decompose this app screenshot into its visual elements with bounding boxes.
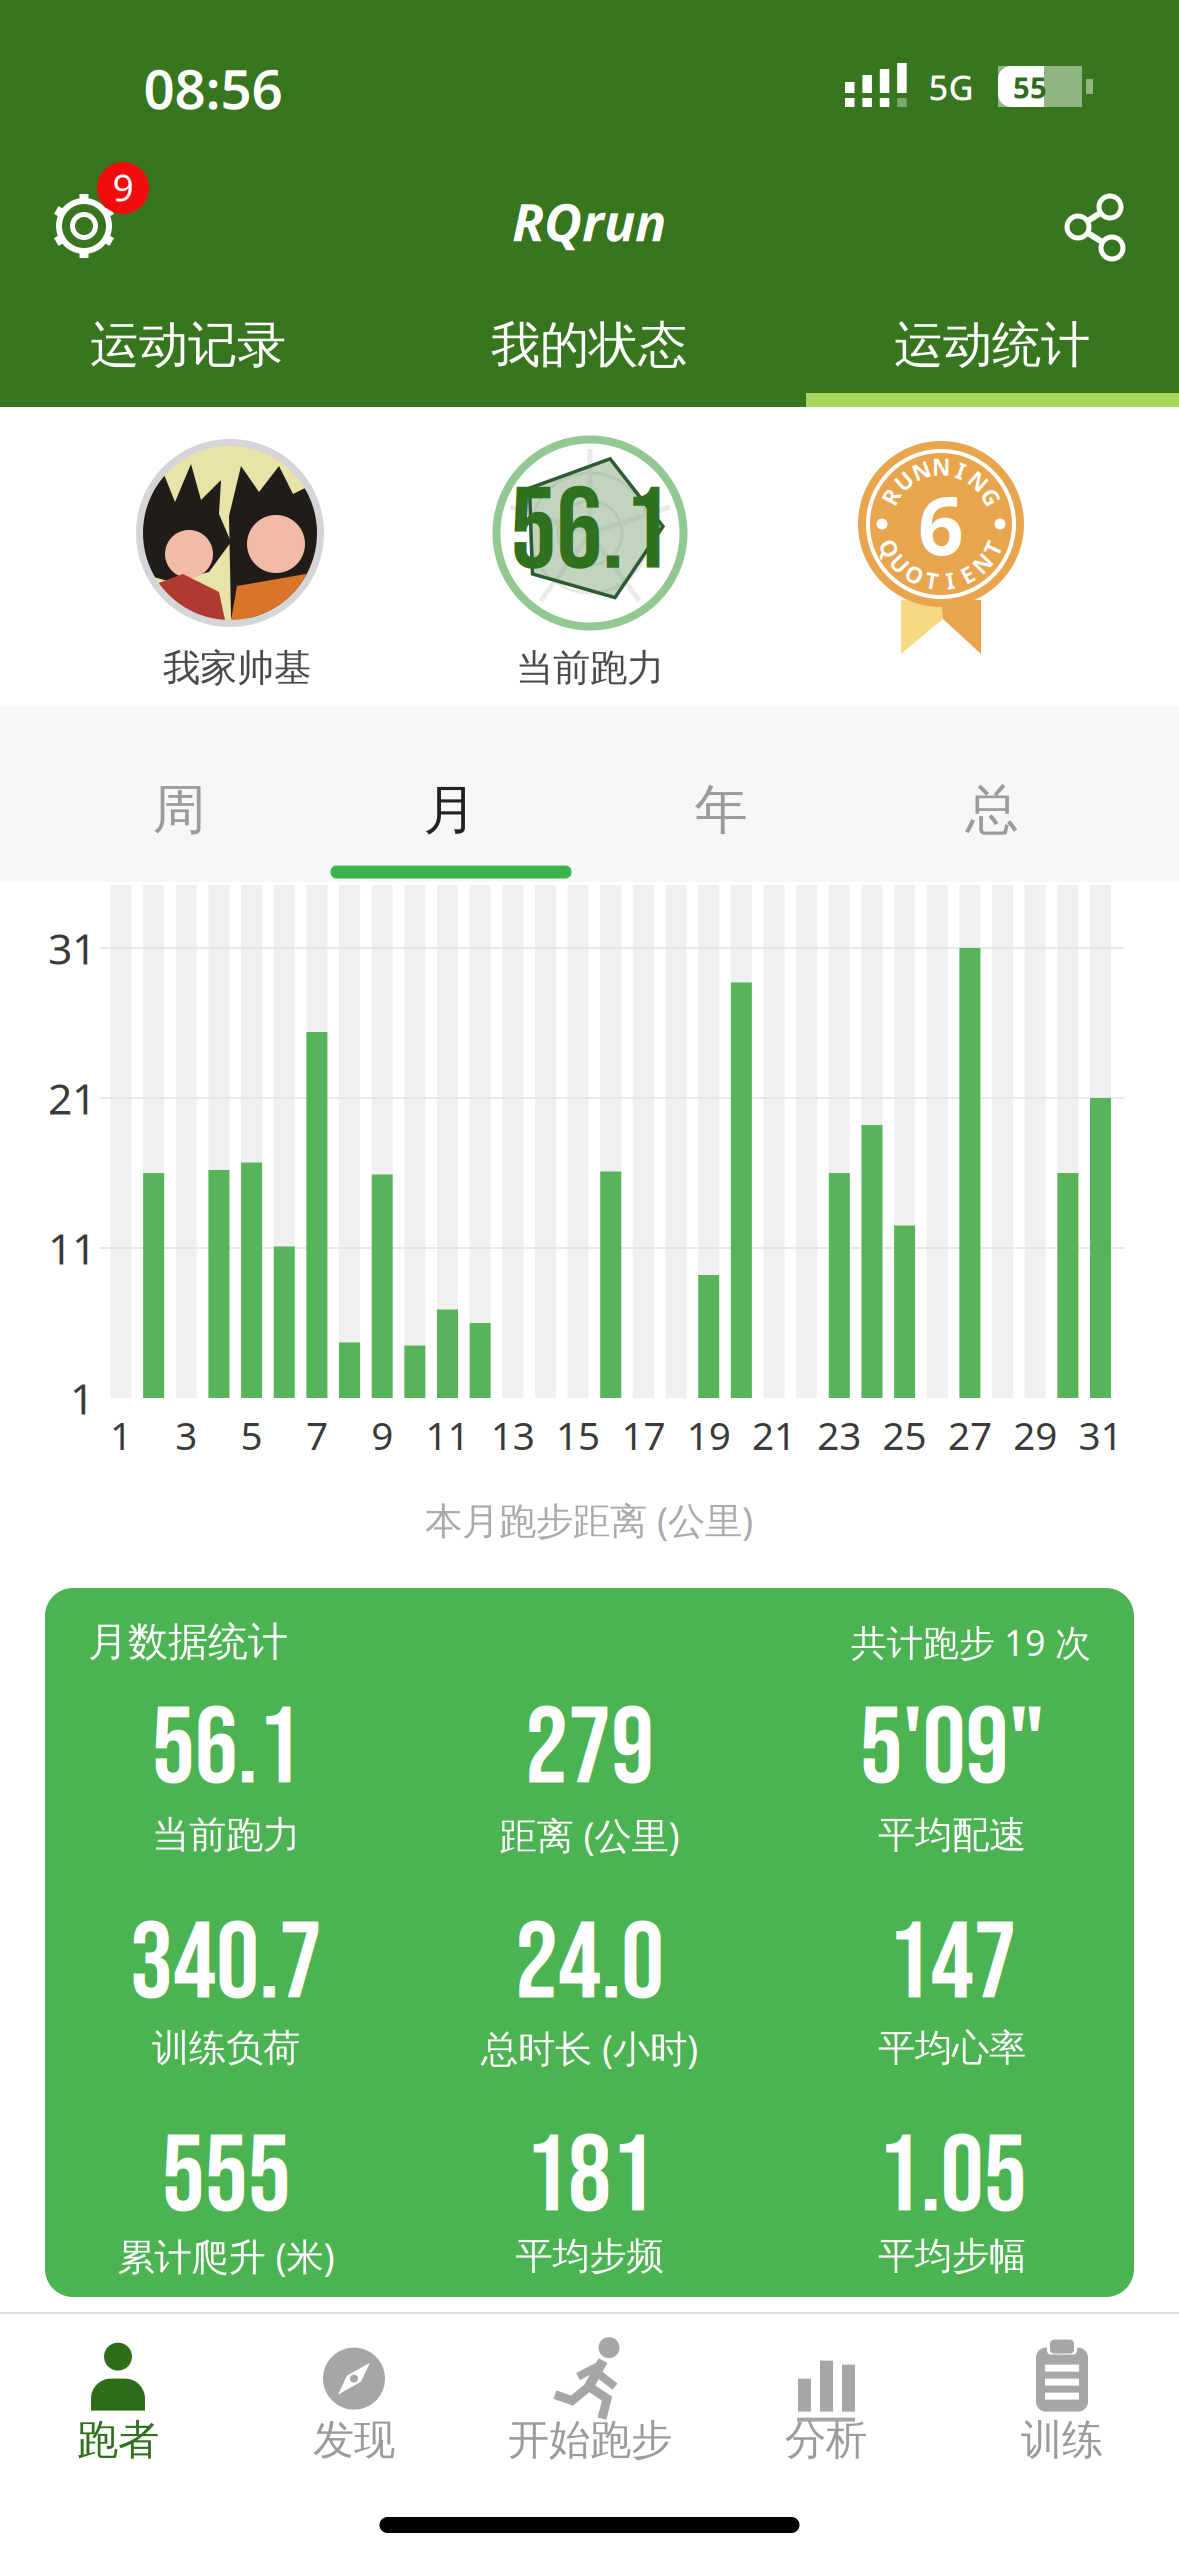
staticText: 总时长 (小时) [481,2023,698,2073]
staticText: 31 [48,920,96,976]
staticText: 开始跑步 [508,2415,672,2465]
button[interactable]: 周 [59,745,299,875]
staticText: U [891,548,908,578]
staticText: 29 [1013,1409,1057,1461]
staticText: 21 [48,1070,96,1126]
staticText: 累计爬升 (米) [117,2231,334,2281]
button[interactable]: 跑者 [0,2325,235,2475]
button[interactable]: 年 [601,745,841,875]
button[interactable]: 开始跑步 [472,2325,707,2475]
staticText: I [946,565,955,595]
button[interactable]: 我的状态 [392,300,785,390]
staticText: N [973,548,991,578]
staticText: 31 [1078,1409,1122,1461]
button[interactable]: 6 [841,422,1041,672]
staticText: 11 [425,1409,469,1461]
staticText: 本月跑步距离 (公里) [425,1495,753,1545]
staticText: 1 [110,1409,132,1461]
staticText: 周 [152,777,205,843]
staticText: T [925,565,938,595]
staticText: 分析 [785,2415,867,2465]
staticText: 9 [371,1409,393,1461]
staticText: 跑者 [77,2415,159,2465]
staticText: 我家帅基 [163,645,311,691]
button[interactable]: 月 [330,745,570,875]
staticText: 共计跑步 19 次 [851,1618,1091,1666]
staticText: 56.1 [151,1685,300,1815]
staticText: 运动统计 [894,315,1090,375]
staticText: R [883,482,898,512]
staticText: 1.05 [877,2113,1026,2243]
staticText: 19 [687,1409,731,1461]
staticText: RQrun [512,186,666,256]
staticText: 发现 [313,2415,395,2465]
staticText: 55 [1013,67,1047,106]
staticText: 年 [694,777,747,843]
button[interactable]: 训练 [944,2325,1179,2475]
staticText: 147 [887,1900,1016,2030]
staticText: 当前跑力 [516,645,664,691]
staticText: 距离 (公里) [499,1810,679,1860]
staticText: 555 [161,2113,290,2243]
staticText: 当前跑力 [152,1812,300,1858]
staticText: 17 [621,1409,665,1461]
staticText: 我的状态 [491,315,687,375]
staticText: U [895,466,912,496]
button[interactable] [136,439,324,627]
button[interactable]: 分析 [708,2325,943,2475]
staticText: 25 [883,1409,927,1461]
button[interactable] [1050,182,1140,272]
button[interactable]: 发现 [236,2325,471,2475]
staticText: 181 [525,2113,654,2243]
staticText: 24.0 [515,1900,664,2030]
staticText: E [961,559,974,589]
staticText: 27 [948,1409,992,1461]
staticText: T [986,533,999,563]
staticText: I [956,456,965,486]
staticText: 23 [817,1409,861,1461]
staticText: 6 [918,471,964,577]
staticText: 08:56 [143,52,282,124]
staticText: 训练负荷 [152,2025,300,2071]
staticText: 3 [175,1409,197,1461]
staticText: 1 [70,1370,94,1426]
staticText: 9 [112,162,133,212]
button[interactable]: 9 [20,150,190,280]
staticText: 训练 [1021,2415,1103,2465]
staticText: 5 [241,1409,263,1461]
button[interactable]: 56.1 [490,433,690,633]
staticText: N [932,452,950,482]
button[interactable]: 总 [872,745,1112,875]
staticText: O [905,559,923,589]
button[interactable]: 运动记录 [0,300,384,390]
staticText: 7 [306,1409,328,1461]
staticText: 11 [48,1220,96,1276]
staticText: 平均步幅 [878,2233,1026,2279]
staticText: G [983,482,999,512]
staticText: 月数据统计 [88,1617,288,1666]
staticText: 279 [525,1685,654,1815]
staticText: 平均心率 [878,2025,1026,2071]
staticText: 15 [556,1409,600,1461]
staticText: Q [880,533,898,563]
staticText: 340.7 [130,1900,322,2030]
staticText: 平均配速 [878,1812,1026,1858]
staticText: 月 [423,777,476,843]
button[interactable]: 运动统计 [795,300,1179,390]
staticText: 5G [928,64,973,110]
staticText: 总 [965,777,1018,843]
staticText: 21 [752,1409,796,1461]
staticText: 平均步频 [515,2233,663,2279]
staticText: N [912,456,930,486]
staticText: 13 [491,1409,535,1461]
staticText: N [969,466,987,496]
staticText: 5'09" [859,1685,1044,1815]
staticText: 运动记录 [90,315,286,375]
staticText: 56.1 [510,463,670,603]
